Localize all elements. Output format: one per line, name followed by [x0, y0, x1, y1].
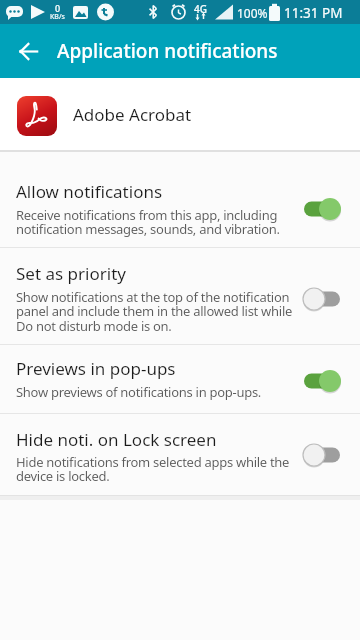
staticText: Adobe Acrobat — [73, 103, 192, 126]
button[interactable] — [304, 286, 344, 312]
button[interactable] — [0, 414, 360, 495]
staticText: 11:31 PM — [284, 4, 343, 22]
staticText: Application notifications — [57, 38, 278, 64]
button[interactable] — [20, 43, 38, 60]
staticText: Previews in pop-ups — [16, 357, 176, 380]
button[interactable] — [0, 152, 360, 247]
staticText: Set as priority — [16, 262, 126, 285]
button[interactable] — [304, 442, 344, 468]
staticText: KB/s — [50, 12, 65, 22]
button[interactable] — [304, 196, 344, 222]
button[interactable] — [304, 368, 344, 394]
staticText: Hide notifications from selected apps wh… — [16, 453, 290, 485]
button[interactable] — [0, 248, 360, 344]
button[interactable]: Adobe Acrobat — [0, 78, 360, 150]
staticText: Receive notifications from this app, inc… — [16, 206, 280, 238]
staticText: 0 — [55, 2, 61, 14]
staticText: Show previews of notifications in pop-up… — [16, 383, 262, 401]
staticText: Allow notifications — [16, 180, 163, 203]
staticText: 4G — [194, 2, 207, 16]
staticText: Hide noti. on Lock screen — [16, 428, 217, 451]
button[interactable] — [0, 345, 360, 413]
staticText: Show notifications at the top of the not… — [16, 288, 293, 335]
staticText: 100% — [237, 5, 268, 21]
